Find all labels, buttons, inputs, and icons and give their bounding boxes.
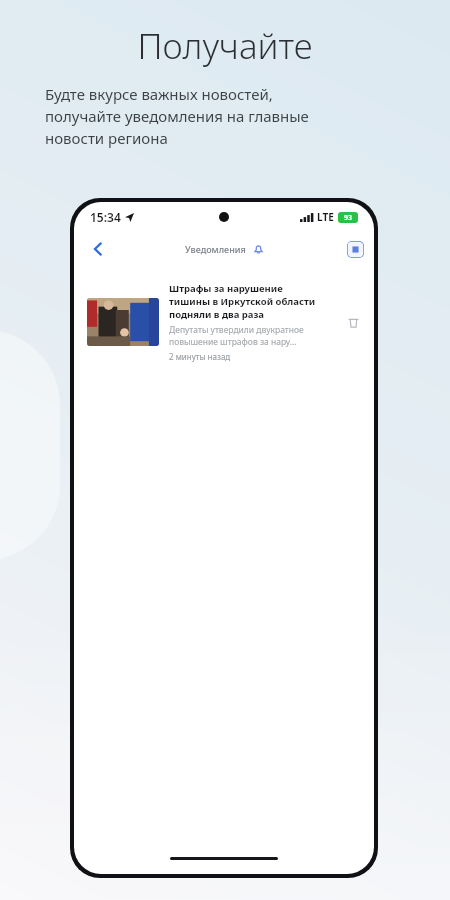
button[interactable]: Штрафы за нарушение тишины в Иркутской о… [74,278,374,366]
staticText: LTE [317,210,334,224]
button[interactable]: Очистить [347,241,364,258]
staticText: Депутаты утвердили двукратное повышение … [169,324,304,348]
staticText: 2 минуты назад [169,351,231,362]
button[interactable]: Назад [84,235,112,263]
staticText: Получайте [0,22,450,70]
staticText: 93 [344,213,353,223]
button[interactable]: Удалить [342,311,364,333]
staticText: Штрафы за нарушение тишины в Иркутской о… [169,282,316,321]
staticText: Уведомления [185,243,246,255]
staticText: Будте вкурсе важных новостей, получайте … [45,84,309,149]
staticText: 15:34 [90,209,121,225]
